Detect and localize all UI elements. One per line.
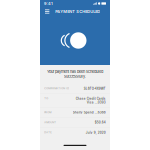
- staticText: Sherry Spend ...6388: [73, 111, 106, 114]
- staticText: Your payment has been scheduled: [47, 69, 103, 74]
- staticText: DATE: [44, 131, 52, 134]
- staticText: 9:41: [44, 1, 53, 6]
- staticText: FROM: [44, 111, 51, 114]
- staticText: SL8FO-4X9WF: [84, 87, 106, 90]
- button[interactable]: Menu: [43, 7, 51, 15]
- staticText: PAYMENT SCHEDULED: [55, 9, 100, 14]
- staticText: successfully.: [64, 74, 86, 79]
- staticText: $50.64: [95, 121, 106, 124]
- staticText: TO: [44, 97, 48, 100]
- staticText: Chase Credit Cards: [76, 97, 106, 100]
- staticText: Visa ...0393: [87, 101, 106, 104]
- staticText: July 9, 2020: [86, 131, 106, 134]
- staticText: CONFIRMATION ID: [44, 87, 69, 90]
- staticText: AMOUNT: [44, 121, 56, 124]
